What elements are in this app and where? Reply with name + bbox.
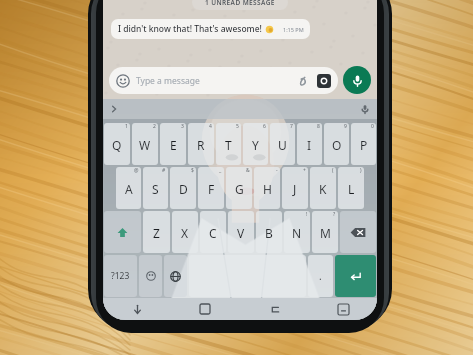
staticText: M <box>320 225 331 241</box>
staticText: 1 UNREAD MESSAGE <box>205 0 275 7</box>
staticText: V <box>237 225 245 241</box>
staticText: A <box>125 181 133 197</box>
button[interactable]: S <box>143 167 168 209</box>
button[interactable]: C <box>200 211 226 253</box>
staticText: 5 <box>236 123 239 130</box>
staticText: 1 <box>125 123 128 130</box>
button[interactable]: Home <box>195 299 215 319</box>
button[interactable]: K <box>310 167 336 209</box>
button[interactable]: Emoji keyboard <box>139 255 162 297</box>
button[interactable]: Change language <box>164 255 187 297</box>
staticText: 9 <box>344 123 347 130</box>
button[interactable]: P <box>351 123 376 165</box>
staticText: Q <box>112 137 122 153</box>
staticText: J <box>293 181 297 197</box>
other: Expand toolbar <box>109 104 119 114</box>
staticText: C <box>209 225 217 241</box>
staticText: S <box>152 181 159 197</box>
button[interactable]: T <box>216 123 241 165</box>
button[interactable]: E <box>160 123 186 165</box>
staticText: 0 <box>371 123 374 130</box>
staticText: K <box>319 181 327 197</box>
staticText: U <box>278 137 287 153</box>
button[interactable]: 1 UNREAD MESSAGE <box>192 0 288 10</box>
button[interactable]: Emoji <box>109 67 338 94</box>
button[interactable]: B <box>256 211 282 253</box>
staticText: # <box>162 167 166 174</box>
button[interactable]: H <box>254 167 280 209</box>
staticText: F <box>208 181 215 197</box>
staticText: 8 <box>317 123 320 130</box>
staticText: ) <box>360 167 362 174</box>
staticText: N <box>292 225 302 241</box>
staticText: R <box>197 137 205 153</box>
staticText: 4 <box>209 123 212 130</box>
button[interactable]: ?123 <box>104 255 137 297</box>
button[interactable]: I didn't know that! That's awesome! <box>111 19 310 39</box>
staticText: G <box>235 181 244 197</box>
staticText: H <box>263 181 272 197</box>
staticText: P <box>360 137 368 153</box>
staticText: ! <box>306 211 308 218</box>
staticText: 2 <box>153 123 156 130</box>
staticText: B <box>265 225 273 241</box>
button[interactable]: W <box>132 123 158 165</box>
button[interactable]: . <box>308 255 333 297</box>
other: Emoji <box>116 74 130 88</box>
button[interactable]: I <box>297 123 322 165</box>
staticText: 6 <box>263 123 266 130</box>
staticText: I didn't know that! That's awesome! <box>118 23 262 35</box>
staticText: . <box>319 269 322 283</box>
button[interactable]: Voice message <box>343 66 371 94</box>
staticText: 3 <box>181 123 184 130</box>
staticText: - <box>276 167 278 174</box>
button[interactable]: Y <box>243 123 268 165</box>
staticText: ( <box>332 167 334 174</box>
button[interactable]: Shift <box>104 211 141 253</box>
staticText: 7 <box>290 123 293 130</box>
button[interactable]: F <box>198 167 224 209</box>
button[interactable]: M <box>312 211 338 253</box>
button[interactable]: Recents <box>264 299 284 319</box>
button[interactable]: Q <box>104 123 130 165</box>
button[interactable]: V <box>228 211 254 253</box>
staticText: 1:15 PM <box>283 26 304 33</box>
staticText: O <box>332 137 342 153</box>
button[interactable]: R <box>188 123 214 165</box>
staticText: T <box>225 137 232 153</box>
staticText: @ <box>134 167 139 174</box>
staticText: ? <box>333 211 336 218</box>
staticText: E <box>170 137 177 153</box>
staticText: ?123 <box>111 270 130 282</box>
button[interactable]: Backspace <box>340 211 376 253</box>
staticText: W <box>139 137 151 153</box>
staticText: L <box>348 181 355 197</box>
staticText: Z <box>153 225 160 241</box>
staticText: D <box>179 181 188 197</box>
button[interactable]: Z <box>143 211 170 253</box>
other: Attach <box>295 74 309 88</box>
staticText: Y <box>252 137 259 153</box>
button[interactable]: Camera <box>317 74 331 88</box>
button[interactable]: J <box>282 167 308 209</box>
staticText: $ <box>191 167 194 174</box>
staticText: I <box>307 137 312 153</box>
button[interactable]: Enter <box>335 255 376 297</box>
button[interactable]: Voice input <box>360 104 370 114</box>
button[interactable]: D <box>170 167 196 209</box>
staticText: + <box>303 167 306 174</box>
button[interactable]: X <box>172 211 198 253</box>
button[interactable]: G <box>226 167 252 209</box>
staticText: _ <box>219 167 222 174</box>
staticText: X <box>181 225 189 241</box>
staticText: Type a message <box>136 75 200 87</box>
button[interactable]: Hide keyboard <box>127 299 147 319</box>
button[interactable]: U <box>270 123 295 165</box>
button[interactable]: L <box>338 167 364 209</box>
staticText: & <box>246 167 250 174</box>
button[interactable]: Keyboard options <box>333 299 353 319</box>
button[interactable]: A <box>116 167 141 209</box>
button[interactable]: O <box>324 123 349 165</box>
button[interactable]: N <box>284 211 310 253</box>
